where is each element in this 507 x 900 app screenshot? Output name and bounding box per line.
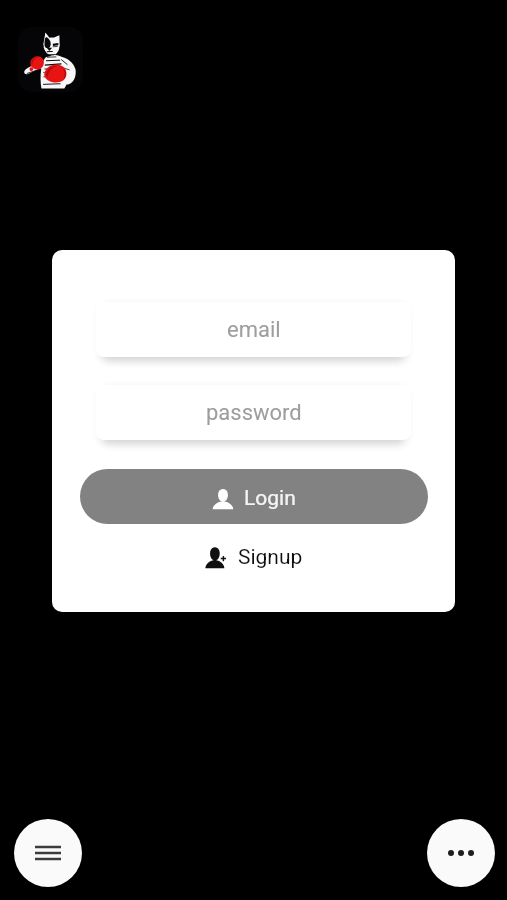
button[interactable]: More options	[427, 819, 495, 887]
staticText: email	[227, 317, 281, 343]
button[interactable]: App logo	[18, 27, 83, 92]
staticText: Signup	[238, 545, 303, 570]
button[interactable]: Login	[80, 469, 428, 524]
button[interactable]: Signup	[79, 537, 428, 577]
button[interactable]: password	[96, 385, 411, 440]
staticText: Login	[244, 486, 296, 511]
staticText: password	[206, 400, 302, 426]
button[interactable]: Menu	[14, 819, 82, 887]
button[interactable]: email	[96, 302, 411, 357]
